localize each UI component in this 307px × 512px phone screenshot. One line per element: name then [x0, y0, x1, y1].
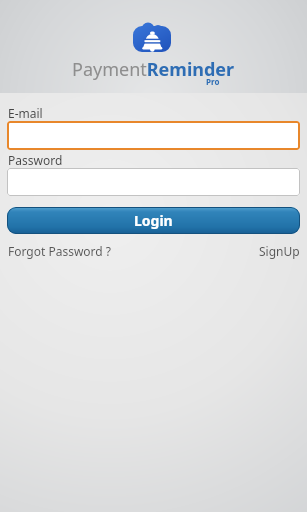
- button[interactable]: SignUp: [259, 243, 300, 259]
- staticText: PaymentReminder: [72, 57, 235, 82]
- button[interactable]: Forgot Password ?: [8, 243, 112, 259]
- staticText: Pro: [206, 76, 220, 87]
- button[interactable]: [7, 168, 300, 196]
- staticText: Login: [134, 211, 173, 230]
- staticText: SignUp: [259, 243, 300, 259]
- button[interactable]: [7, 121, 300, 150]
- staticText: Forgot Password ?: [8, 243, 112, 259]
- staticText: Password: [8, 152, 63, 168]
- button[interactable]: Login: [7, 207, 300, 234]
- staticText: E-mail: [8, 105, 43, 121]
